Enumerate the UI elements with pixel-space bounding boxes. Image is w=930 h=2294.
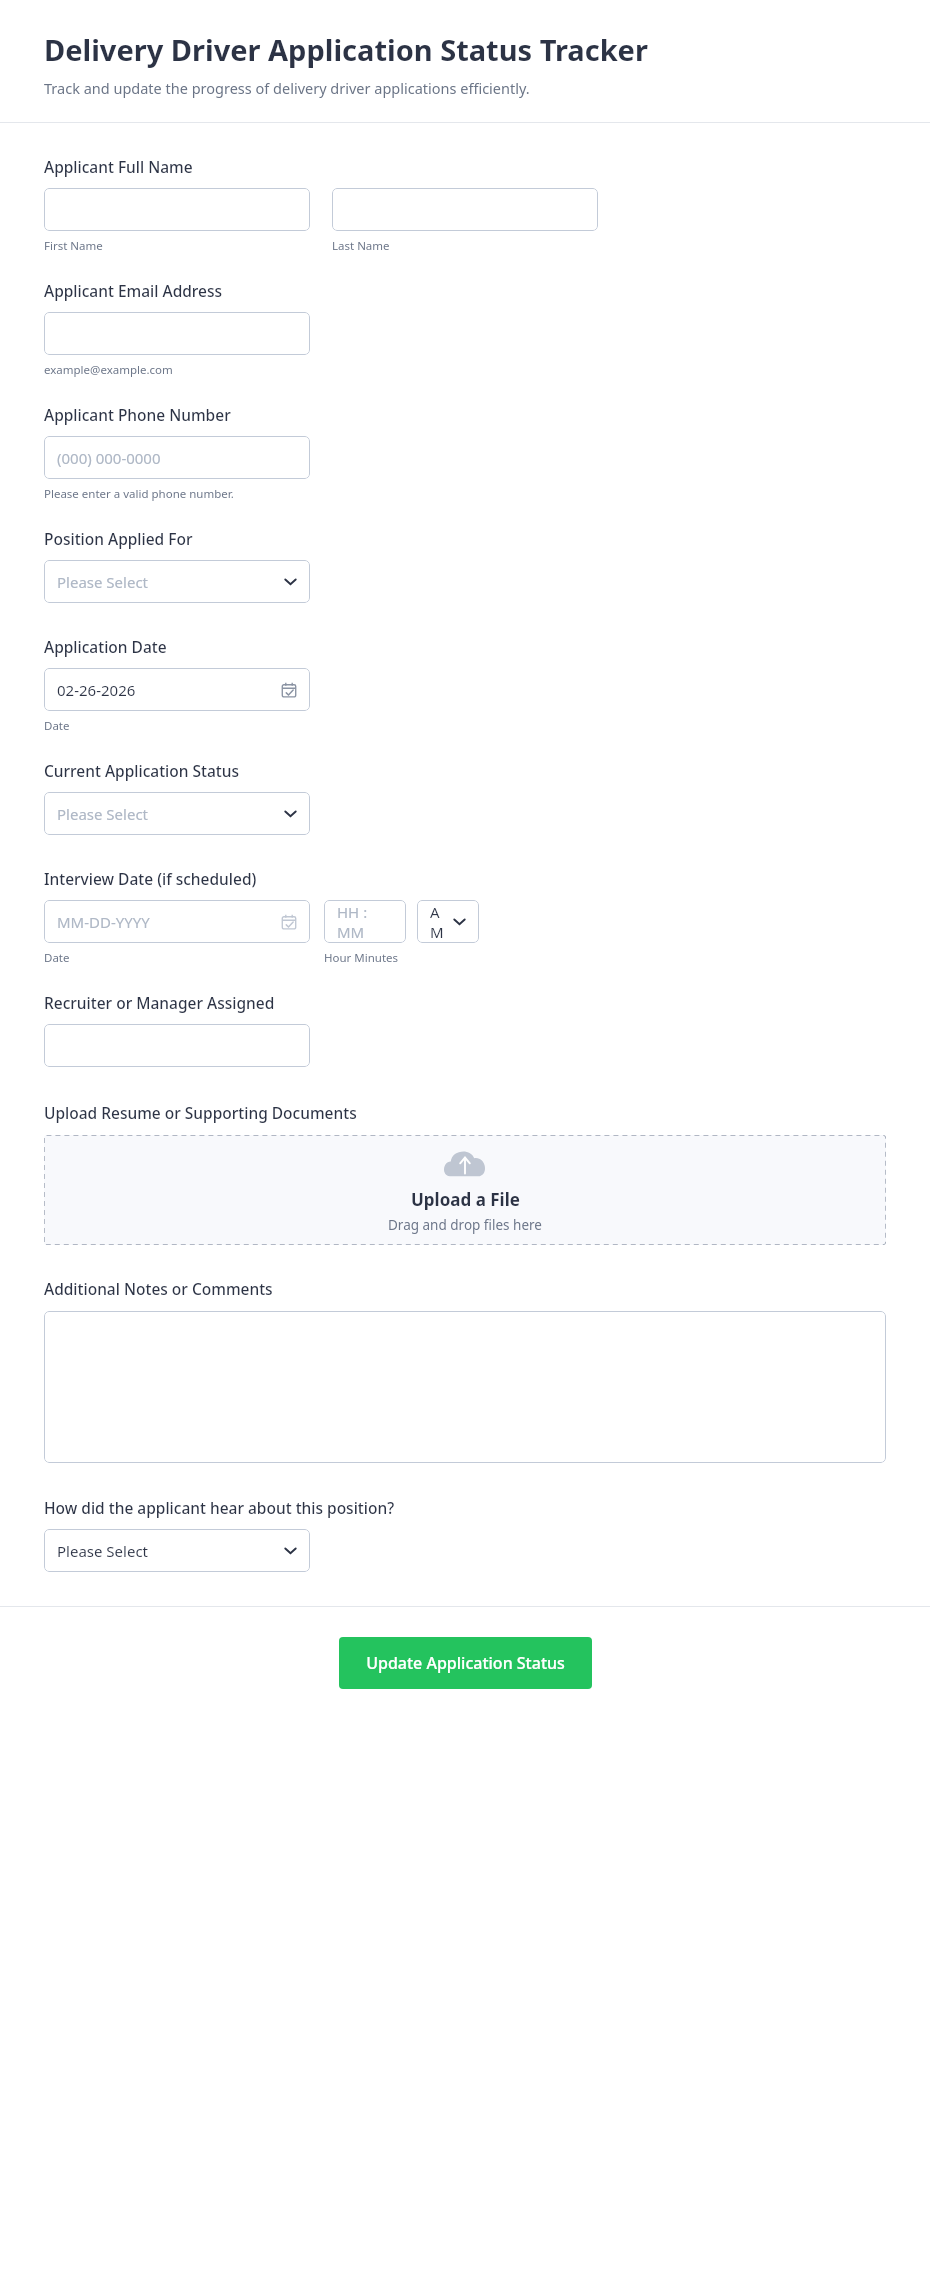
- button[interactable]: Applicant Email Address: [44, 312, 310, 355]
- staticText: Upload a File: [411, 1188, 520, 1211]
- button[interactable]: Upload a File: [44, 1135, 886, 1245]
- button[interactable]: Last Name: [332, 188, 598, 231]
- staticText: How did the applicant hear about this po…: [44, 1497, 395, 1518]
- staticText: Position Applied For: [44, 528, 193, 549]
- button[interactable]: AM or PM: [417, 900, 479, 943]
- staticText: MM-DD-YYYY: [57, 912, 150, 932]
- staticText: Please Select: [57, 804, 149, 824]
- staticText: Upload Resume or Supporting Documents: [44, 1102, 357, 1123]
- button[interactable]: Position Applied For: [44, 560, 310, 603]
- staticText: AM: [430, 902, 453, 942]
- button[interactable]: Applicant Phone Number: [44, 436, 310, 479]
- staticText: Date: [44, 718, 70, 734]
- staticText: Interview Date (if scheduled): [44, 868, 257, 889]
- staticText: Please Select: [57, 1541, 149, 1561]
- staticText: Applicant Full Name: [44, 156, 193, 177]
- staticText: Delivery Driver Application Status Track…: [44, 30, 648, 69]
- button[interactable]: Update Application Status: [339, 1637, 592, 1689]
- staticText: (000) 000-0000: [57, 448, 161, 468]
- staticText: Hour Minutes: [324, 950, 399, 966]
- button[interactable]: Interview Date: [44, 900, 310, 943]
- staticText: Application Date: [44, 636, 167, 657]
- staticText: Update Application Status: [366, 1652, 565, 1674]
- button[interactable]: Additional Notes or Comments: [44, 1311, 886, 1463]
- staticText: Applicant Phone Number: [44, 404, 231, 425]
- staticText: Drag and drop files here: [388, 1216, 542, 1234]
- button[interactable]: First Name: [44, 188, 310, 231]
- staticText: Last Name: [332, 238, 390, 254]
- staticText: 02-26-2026: [57, 680, 136, 700]
- button[interactable]: How did the applicant hear about this po…: [44, 1529, 310, 1572]
- staticText: Applicant Email Address: [44, 280, 223, 301]
- staticText: Additional Notes or Comments: [44, 1278, 273, 1299]
- button[interactable]: Hour Minutes: [324, 900, 406, 943]
- staticText: First Name: [44, 238, 103, 254]
- staticText: Please Select: [57, 572, 149, 592]
- button[interactable]: Recruiter or Manager Assigned: [44, 1024, 310, 1067]
- button[interactable]: Application Date: [44, 668, 310, 711]
- staticText: Current Application Status: [44, 760, 240, 781]
- staticText: Track and update the progress of deliver…: [44, 78, 530, 98]
- staticText: example@example.com: [44, 362, 173, 378]
- button[interactable]: Current Application Status: [44, 792, 310, 835]
- staticText: Recruiter or Manager Assigned: [44, 992, 275, 1013]
- staticText: Date: [44, 950, 70, 966]
- staticText: HH : MM: [337, 902, 393, 942]
- staticText: Please enter a valid phone number.: [44, 486, 234, 502]
